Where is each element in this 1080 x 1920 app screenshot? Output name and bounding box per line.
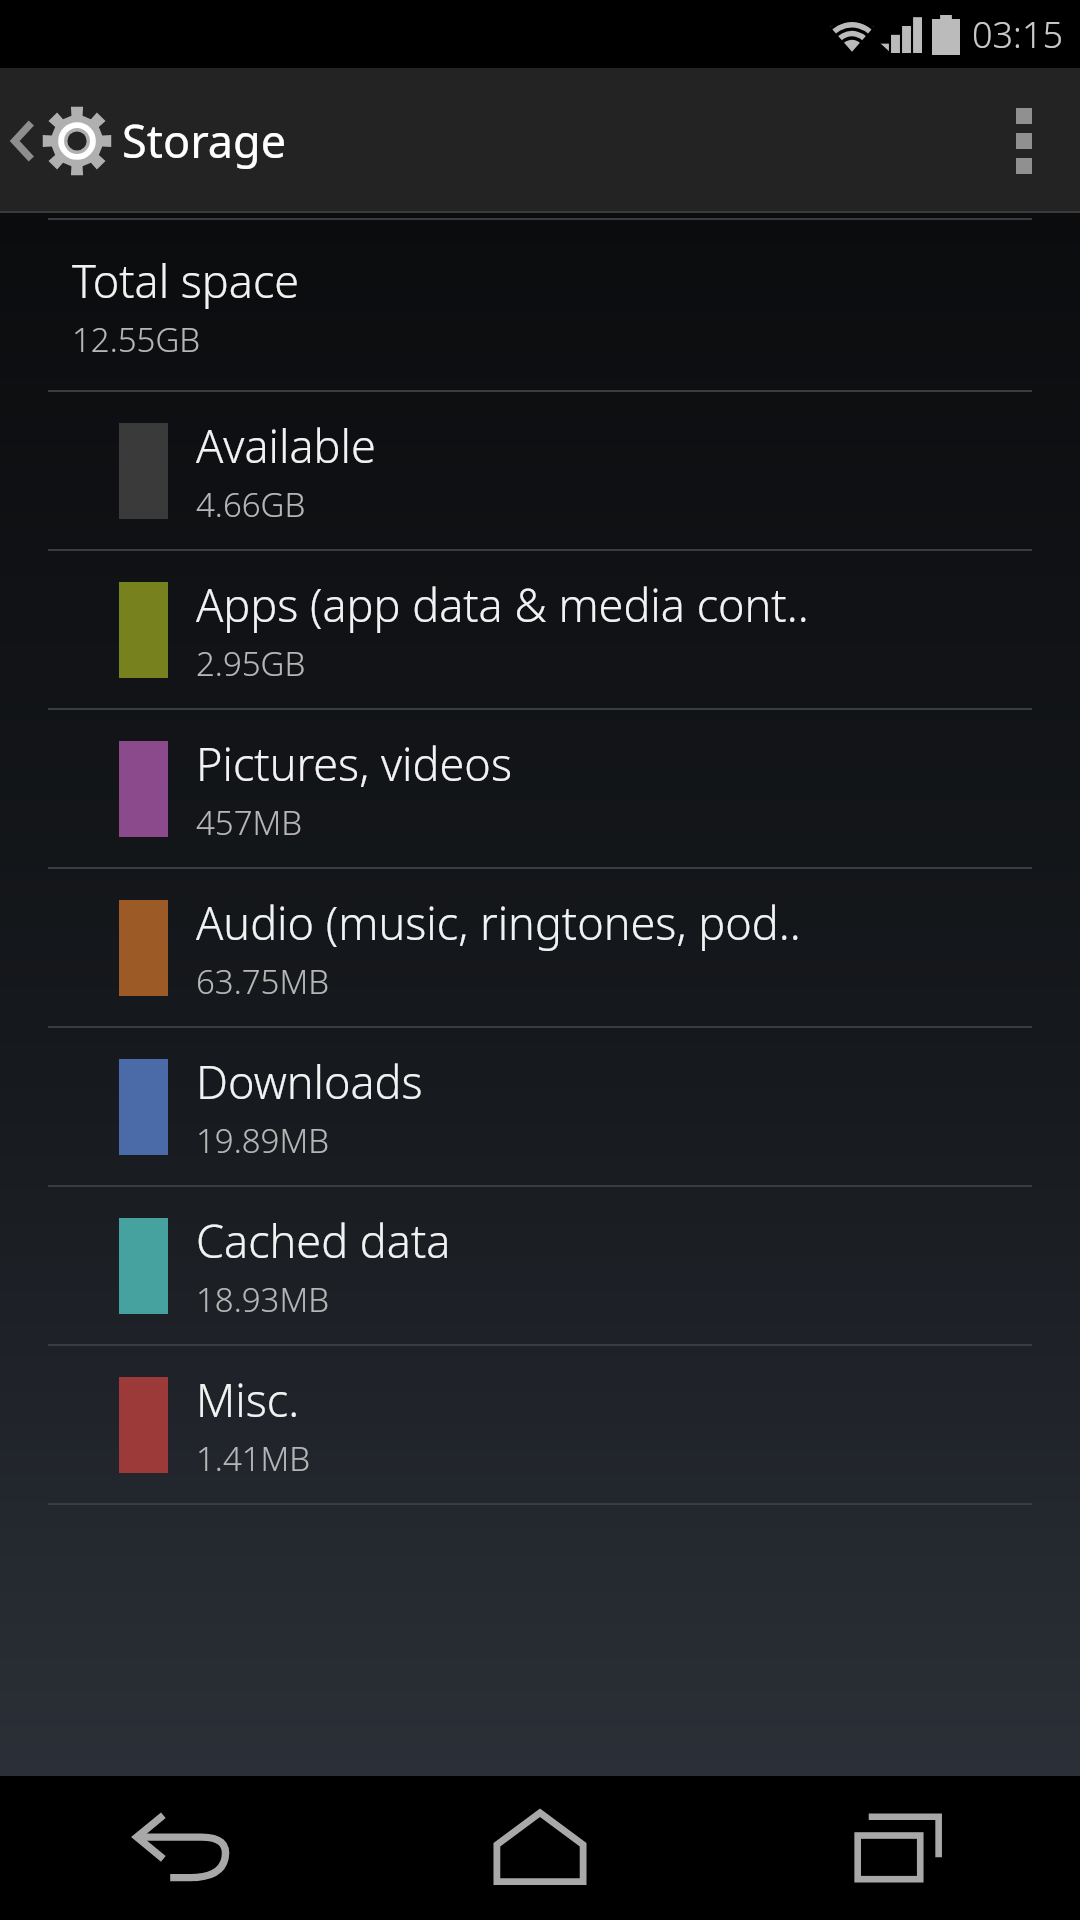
staticText: Misc. — [196, 1369, 300, 1430]
button[interactable]: Pictures, videos — [0, 710, 1080, 867]
button[interactable]: Total space — [0, 220, 1080, 390]
staticText: 1.41MB — [196, 1436, 311, 1481]
staticText: 457MB — [196, 800, 303, 845]
staticText: Cached data — [196, 1210, 451, 1271]
button[interactable]: Audio (music, ringtones, pod.. — [0, 869, 1080, 1026]
button[interactable]: Home — [360, 1776, 720, 1920]
staticText: Total space — [72, 250, 300, 311]
staticText: Downloads — [196, 1051, 423, 1112]
button[interactable]: Available — [0, 392, 1080, 549]
button[interactable]: Apps (app data & media cont.. — [0, 551, 1080, 708]
button[interactable]: Recent apps — [720, 1776, 1080, 1920]
button[interactable]: More options — [968, 68, 1080, 213]
staticText: Available — [196, 415, 376, 476]
staticText: Audio (music, ringtones, pod.. — [196, 892, 801, 953]
button[interactable]: Downloads — [0, 1028, 1080, 1185]
button[interactable]: Misc. — [0, 1346, 1080, 1503]
staticText: 2.95GB — [196, 641, 306, 686]
button[interactable]: Navigate up to Settings — [0, 68, 126, 213]
button[interactable]: Back — [0, 1776, 360, 1920]
staticText: 18.93MB — [196, 1277, 330, 1322]
staticText: 19.89MB — [196, 1118, 330, 1163]
staticText: 03:15 — [972, 10, 1064, 59]
staticText: Pictures, videos — [196, 733, 512, 794]
button[interactable]: Cached data — [0, 1187, 1080, 1344]
staticText: 12.55GB — [72, 317, 201, 362]
staticText: 4.66GB — [196, 482, 306, 527]
staticText: Storage — [122, 110, 287, 171]
staticText: Apps (app data & media cont.. — [196, 574, 809, 635]
staticText: 63.75MB — [196, 959, 330, 1004]
